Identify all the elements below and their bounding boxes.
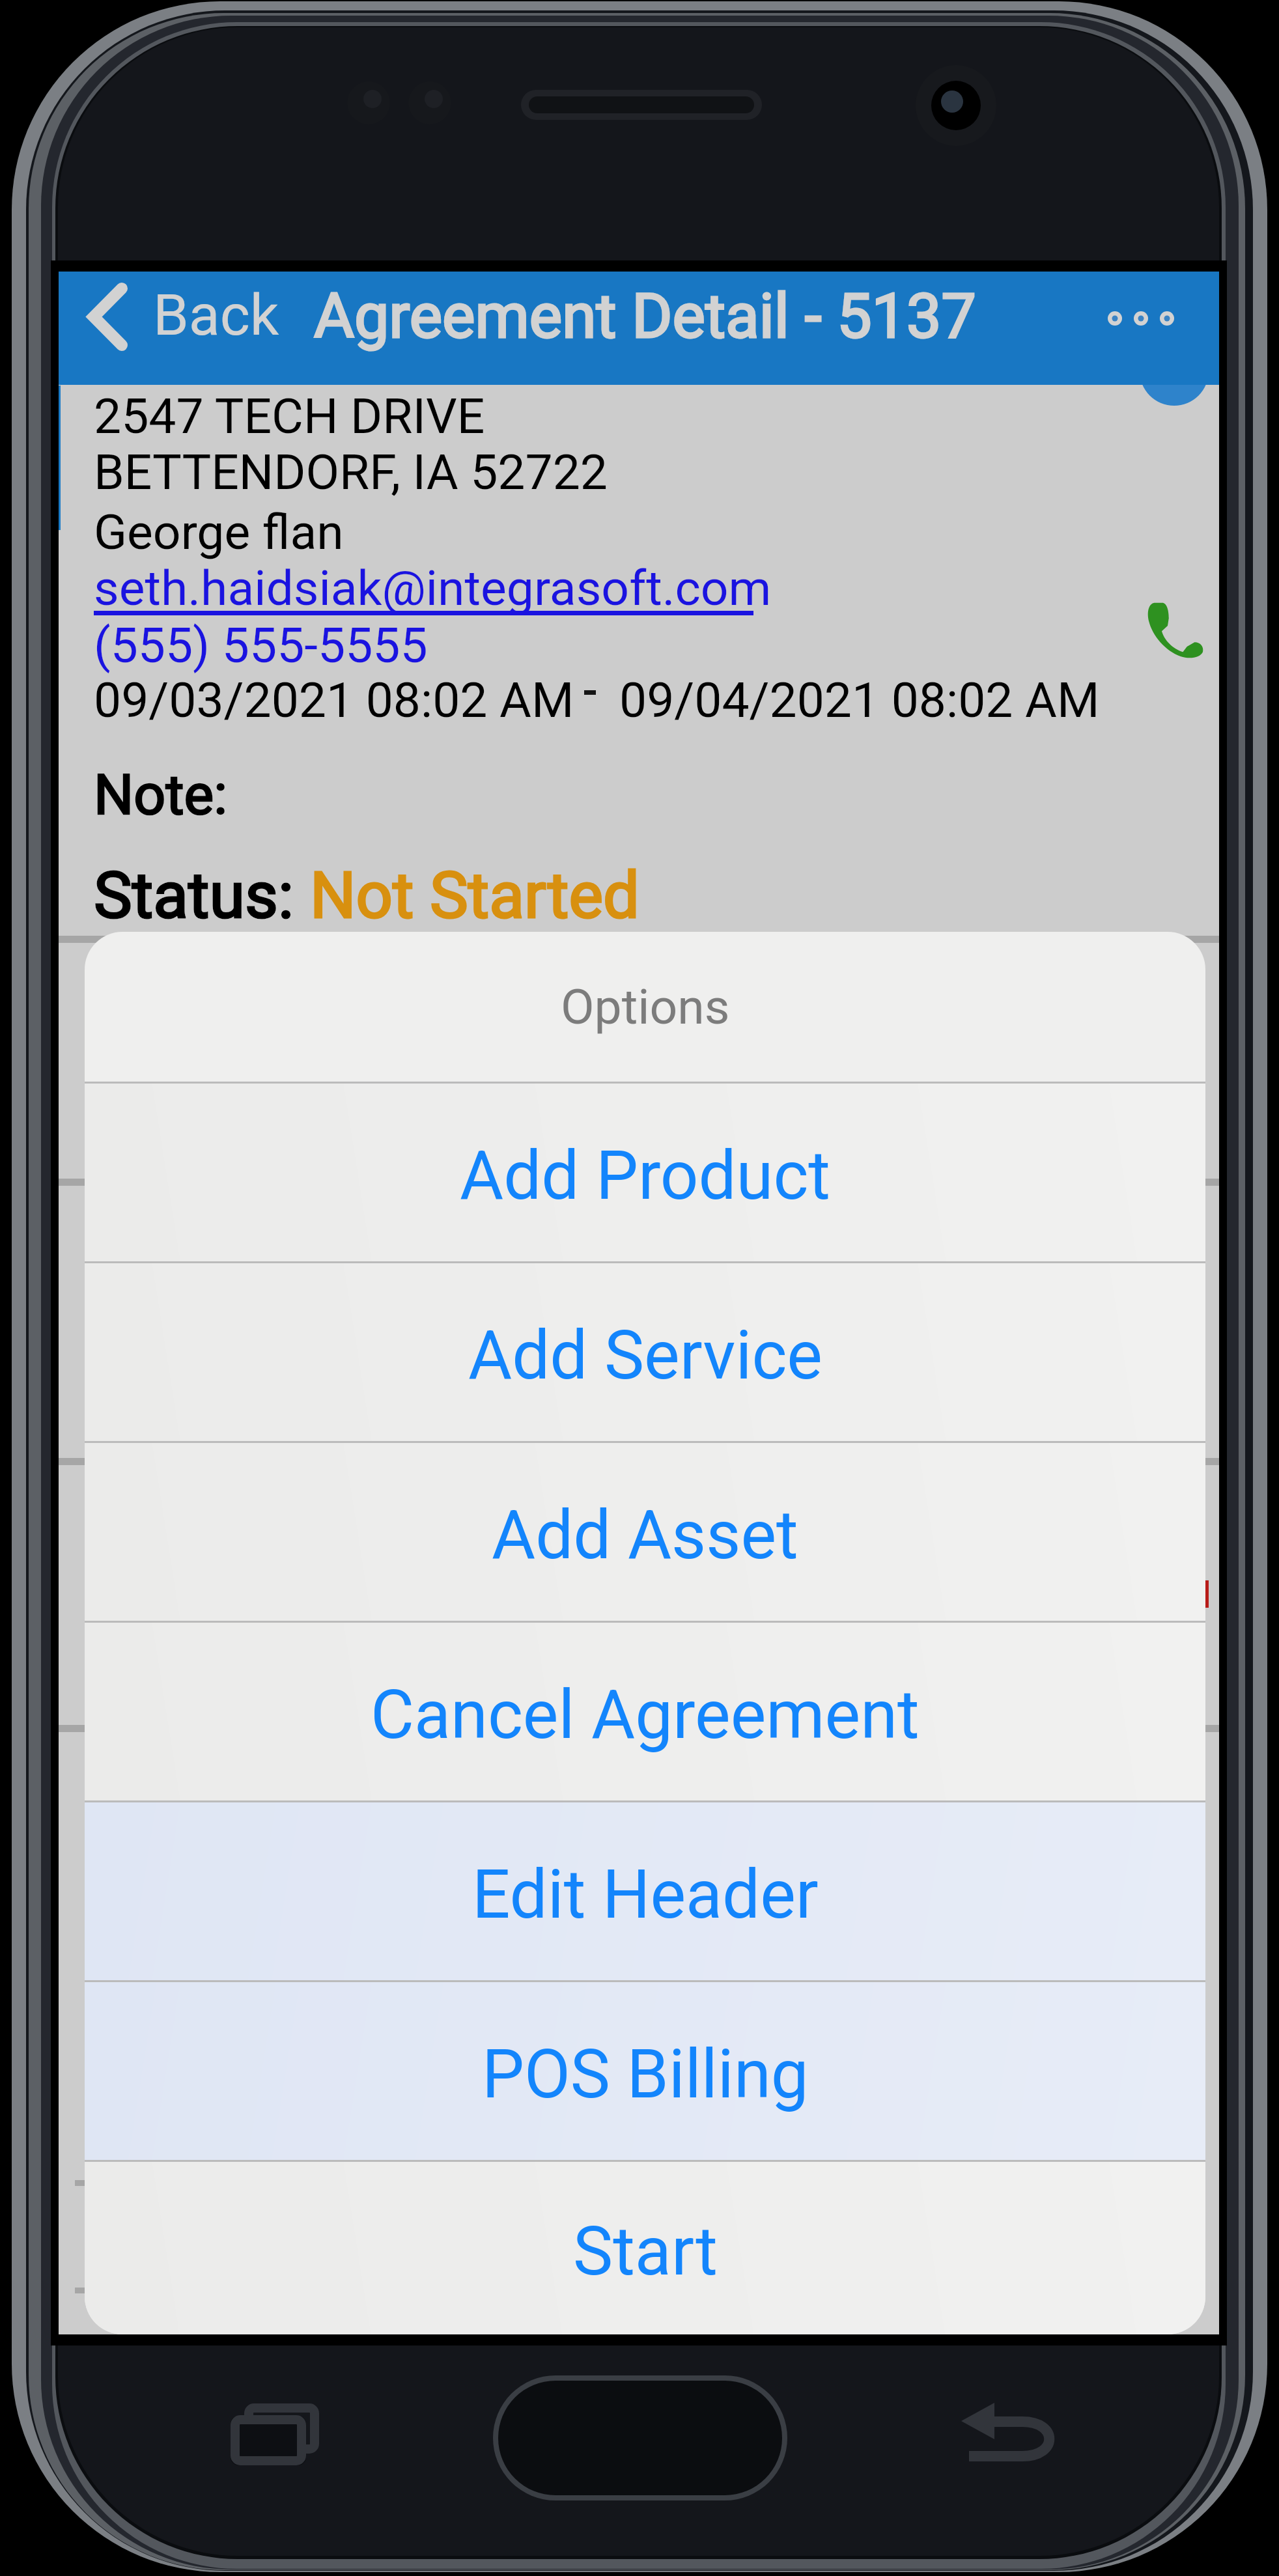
button[interactable]: Add Asset: [85, 1443, 1205, 1621]
staticText: 09/04/2021 08:02 AM: [619, 671, 1100, 729]
button[interactable]: Profile: [1140, 337, 1209, 406]
staticText: Not Started: [310, 858, 639, 933]
staticText: POS Billing: [482, 2035, 809, 2114]
button[interactable]: Call: [1138, 595, 1209, 663]
button[interactable]: POS Billing: [85, 1982, 1205, 2160]
button[interactable]: More options: [1095, 292, 1187, 348]
button[interactable]: Start: [85, 2162, 1205, 2334]
staticText: BETTENDORF, IA 52722: [94, 443, 608, 501]
staticText: Add Product: [460, 1136, 831, 1215]
button[interactable]: (555) 555-5555: [94, 617, 428, 674]
staticText: Add Service: [468, 1316, 822, 1395]
staticText: George flan: [94, 503, 344, 561]
button[interactable]: Back: [153, 281, 279, 348]
button[interactable]: seth.haidsiak@integrasoft.com: [94, 559, 772, 617]
button[interactable]: Add Service: [85, 1263, 1205, 1441]
staticText: Status:: [94, 858, 310, 933]
staticText: Agreement Detail - 5137: [314, 280, 976, 352]
button[interactable]: Back: [78, 276, 137, 357]
staticText: Edit Header: [472, 1855, 819, 1934]
staticText: Cancel Agreement: [371, 1675, 920, 1754]
staticText: Note:: [94, 762, 227, 828]
button[interactable]: Add Product: [85, 1084, 1205, 1261]
button[interactable]: Edit Header: [85, 1802, 1205, 1980]
staticText: 2547 TECH DRIVE: [94, 387, 485, 445]
staticText: Start: [573, 2212, 718, 2291]
button[interactable]: Cancel Agreement: [85, 1623, 1205, 1800]
staticText: 09/03/2021 08:02 AM: [94, 671, 574, 729]
staticText: Add Asset: [492, 1496, 798, 1575]
staticText: Options: [561, 978, 730, 1035]
